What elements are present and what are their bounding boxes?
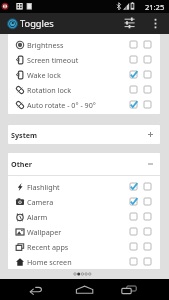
button[interactable]: Wallpaper on	[127, 225, 140, 238]
button[interactable]: Screen timeout	[8, 52, 160, 67]
button[interactable]: Wallpaper widget	[141, 225, 154, 238]
staticText: Auto rotate - 0° - 90°	[27, 100, 96, 110]
button[interactable]: Recent apps widget	[141, 240, 154, 253]
staticText: Rotation lock	[27, 85, 72, 95]
staticText: Camera	[27, 197, 54, 207]
button[interactable]: Recent apps on	[127, 240, 140, 253]
staticText: Brightness	[27, 40, 64, 50]
button[interactable]: Camera on	[127, 195, 140, 208]
button[interactable]: Alarm on	[127, 210, 140, 223]
button[interactable]: System	[8, 125, 160, 144]
staticText: Flashlight	[27, 182, 60, 192]
button[interactable]: Auto rotate - 0° - 90° on	[127, 98, 140, 111]
button[interactable]: Wake lock	[8, 67, 160, 82]
staticText: 21:25	[145, 2, 165, 12]
button[interactable]: Wake lock widget	[141, 68, 154, 81]
button[interactable]: Wake lock on	[127, 68, 140, 81]
button[interactable]: Camera	[8, 194, 160, 209]
button[interactable]: Other	[8, 153, 160, 175]
staticText: Screen timeout	[27, 55, 79, 65]
staticText: System	[11, 130, 38, 140]
button[interactable]: Brightness	[8, 37, 160, 52]
staticText: Recent apps	[27, 242, 69, 252]
staticText: Home screen	[27, 257, 72, 267]
button[interactable]: Auto rotate - 0° - 90° widget	[141, 98, 154, 111]
button[interactable]: Rotation lock	[8, 82, 160, 97]
button[interactable]: Recent apps	[111, 279, 151, 300]
button[interactable]: Rotation lock widget	[141, 83, 154, 96]
button[interactable]: Recent apps	[8, 239, 160, 254]
button[interactable]: Flashlight widget	[141, 180, 154, 193]
staticText: Alarm	[27, 212, 48, 222]
staticText: Other	[11, 159, 32, 169]
button[interactable]: Wallpaper	[8, 224, 160, 239]
button[interactable]: Home screen widget	[141, 255, 154, 268]
button[interactable]: Brightness on	[127, 38, 140, 51]
button[interactable]: Auto rotate - 0° - 90°	[8, 97, 160, 112]
button[interactable]: Flashlight on	[127, 180, 140, 193]
button[interactable]: Alarm widget	[141, 210, 154, 223]
button[interactable]: Home	[65, 279, 105, 300]
button[interactable]: Brightness widget	[141, 38, 154, 51]
button[interactable]: Alarm	[8, 209, 160, 224]
button[interactable]: Screen timeout widget	[141, 53, 154, 66]
button[interactable]: Rotation lock on	[127, 83, 140, 96]
button[interactable]: Screen timeout on	[127, 53, 140, 66]
button[interactable]: Home screen	[8, 254, 160, 269]
button[interactable]: Home screen on	[127, 255, 140, 268]
staticText: Toggles	[20, 17, 54, 30]
button[interactable]: Camera widget	[141, 195, 154, 208]
staticText: Wallpaper	[27, 227, 62, 237]
button[interactable]: Flashlight	[8, 179, 160, 194]
button[interactable]: More options	[146, 15, 164, 33]
button[interactable]: Configure toggles	[126, 14, 146, 34]
button[interactable]: Back	[17, 279, 57, 300]
staticText: Wake lock	[27, 70, 61, 80]
